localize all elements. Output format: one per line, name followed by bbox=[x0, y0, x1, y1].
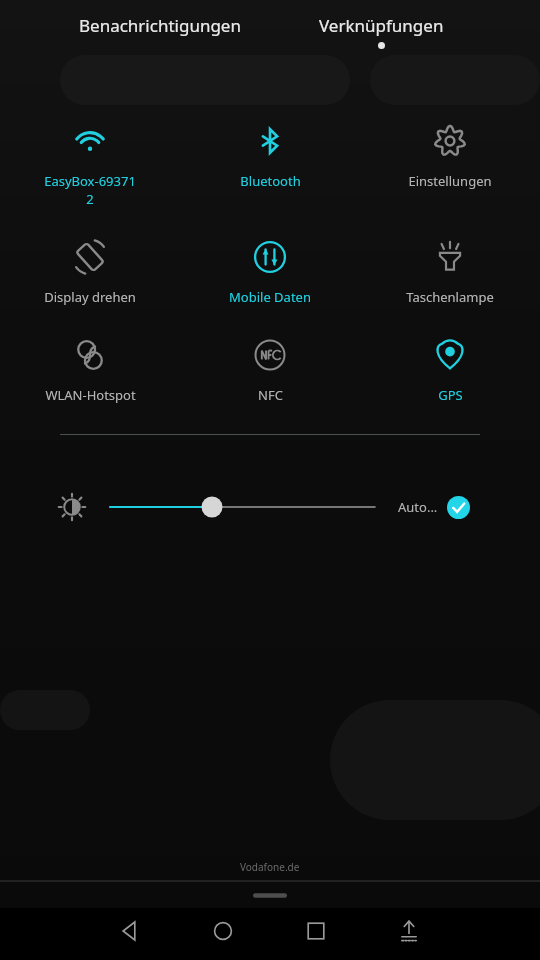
staticText: Auto... bbox=[398, 498, 438, 516]
button[interactable]: Bluetooth bbox=[180, 120, 360, 190]
button[interactable]: Zurück bbox=[107, 908, 153, 954]
staticText: Taschenlampe bbox=[406, 288, 494, 306]
button[interactable]: NFC bbox=[180, 334, 360, 404]
button[interactable]: Helligkeitsregler bbox=[100, 487, 390, 527]
staticText: Einstellungen bbox=[408, 172, 492, 190]
button[interactable]: Auto... bbox=[398, 487, 470, 527]
button[interactable]: Startseite bbox=[200, 908, 246, 954]
button[interactable]: Menü bbox=[386, 908, 432, 954]
button[interactable]: Helligkeit bbox=[52, 487, 92, 527]
button[interactable]: WLAN-Hotspot bbox=[0, 334, 180, 404]
button[interactable]: Mobile Daten bbox=[180, 236, 360, 306]
staticText: Display drehen bbox=[44, 288, 136, 306]
button[interactable]: EasyBox-69371 2 bbox=[0, 120, 180, 208]
staticText: NFC bbox=[258, 386, 283, 404]
staticText: Mobile Daten bbox=[229, 288, 311, 306]
button[interactable]: Display drehen bbox=[0, 236, 180, 306]
button[interactable]: Benachrichtigungen bbox=[30, 14, 290, 54]
staticText: WLAN-Hotspot bbox=[45, 386, 136, 404]
button[interactable]: Verknüpfungen bbox=[292, 14, 470, 54]
staticText: GPS bbox=[438, 386, 463, 404]
staticText: Verknüpfungen bbox=[319, 14, 444, 37]
staticText: Vodafone.de bbox=[240, 860, 300, 874]
staticText: EasyBox-69371 2 bbox=[44, 172, 136, 208]
staticText: Benachrichtigungen bbox=[79, 14, 241, 37]
staticText: Bluetooth bbox=[240, 172, 301, 190]
button[interactable]: Taschenlampe bbox=[360, 236, 540, 306]
button[interactable]: GPS bbox=[360, 334, 540, 404]
button[interactable]: Übersicht bbox=[293, 908, 339, 954]
button[interactable]: Einstellungen bbox=[360, 120, 540, 190]
button[interactable]: Schließen bbox=[0, 882, 540, 908]
